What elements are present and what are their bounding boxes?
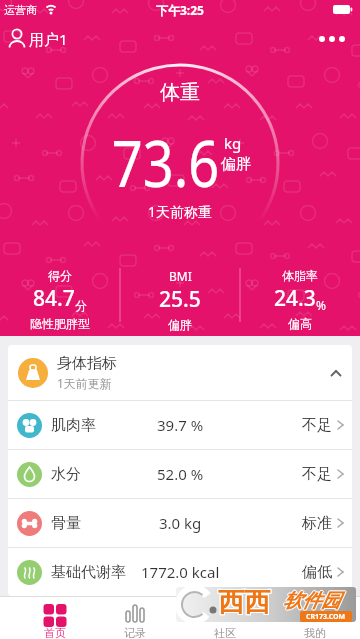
staticText: 52.0 % <box>157 464 204 484</box>
staticText: 西西 <box>219 587 271 620</box>
staticText: 用户1 <box>29 29 68 49</box>
button[interactable]: 骨量 <box>8 499 352 547</box>
staticText: 不足 <box>302 465 332 484</box>
button[interactable]: 肌肉率 <box>8 401 352 449</box>
staticText: 不足 <box>302 416 332 435</box>
staticText: 我的 <box>304 626 326 639</box>
staticText: 偏胖 <box>221 155 251 174</box>
button[interactable]: 身体指标 <box>8 345 352 400</box>
staticText: 1天前更新 <box>57 375 112 391</box>
staticText: CR173.COM <box>306 612 346 622</box>
button[interactable]: 记录 <box>90 597 180 639</box>
button[interactable]: 我的 <box>270 597 360 639</box>
staticText: 西西 <box>218 586 270 619</box>
button[interactable]: 基础代谢率 <box>8 548 352 596</box>
staticText: % <box>316 297 326 313</box>
staticText: 24.3 <box>274 284 316 313</box>
staticText: 25.5 <box>159 285 201 314</box>
staticText: 软件园 <box>283 590 340 614</box>
staticText: 隐性肥胖型 <box>30 316 90 331</box>
staticText: BMI <box>169 268 192 284</box>
staticText: 基础代谢率 <box>51 563 126 582</box>
button[interactable]: 得分 <box>0 268 120 331</box>
button[interactable] <box>310 28 354 50</box>
staticText: 标准 <box>302 514 332 533</box>
staticText: 西西 <box>217 585 269 618</box>
staticText: 软件园 <box>283 589 340 613</box>
staticText: 身体指标 <box>57 354 117 373</box>
staticText: 西西 <box>217 587 269 620</box>
staticText: 1772.0 kcal <box>141 562 220 582</box>
staticText: 39.7 % <box>157 415 204 435</box>
staticText: 下午3:25 <box>156 2 204 18</box>
staticText: 偏高 <box>288 316 312 331</box>
staticText: 84.7 <box>33 284 75 313</box>
staticText: 水分 <box>51 465 81 484</box>
staticText: 社区 <box>214 626 236 639</box>
button[interactable]: 体脂率 <box>240 268 360 331</box>
staticText: 偏胖 <box>168 317 192 332</box>
button[interactable] <box>4 26 84 52</box>
staticText: 得分 <box>48 268 72 283</box>
staticText: 西西 <box>217 586 269 619</box>
staticText: 西西 <box>219 586 271 619</box>
staticText: 记录 <box>124 626 146 639</box>
staticText: 3.0 kg <box>159 513 202 533</box>
staticText: 运营商 <box>4 3 37 17</box>
staticText: 西西 <box>218 587 270 620</box>
staticText: 偏低 <box>302 563 332 582</box>
staticText: 分 <box>75 298 87 313</box>
staticText: 首页 <box>44 626 66 639</box>
staticText: 骨量 <box>51 514 81 533</box>
staticText: 1天前称重 <box>148 202 213 221</box>
staticText: 西西 <box>218 585 270 618</box>
staticText: 73.6 <box>112 120 219 206</box>
button[interactable]: 首页 <box>0 597 90 639</box>
staticText: 西西 <box>219 585 271 618</box>
staticText: 肌肉率 <box>51 416 96 435</box>
button[interactable]: BMI <box>120 268 240 332</box>
staticText: 软件园 <box>282 589 339 613</box>
staticText: kg <box>224 133 242 153</box>
staticText: 软件园 <box>284 589 341 613</box>
staticText: 体脂率 <box>282 268 318 283</box>
button[interactable]: 社区 <box>180 597 270 639</box>
staticText: 体重 <box>160 80 200 105</box>
staticText: 软件园 <box>283 588 340 612</box>
button[interactable]: 水分 <box>8 450 352 498</box>
